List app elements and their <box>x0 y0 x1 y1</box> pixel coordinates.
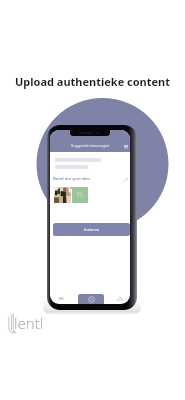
staticText: lentl <box>14 313 44 333</box>
button[interactable]: Add <box>78 294 104 304</box>
button[interactable]: Profile <box>116 295 124 302</box>
staticText: Upload authentieke content <box>0 74 185 89</box>
button[interactable]: Remove photo <box>69 186 73 190</box>
button[interactable]: Menu <box>124 145 128 148</box>
staticText: Insturen <box>84 227 100 232</box>
button[interactable]: Insturen <box>53 223 130 236</box>
button[interactable]: Add photo <box>72 187 88 203</box>
button[interactable]: Home <box>57 295 65 302</box>
staticText: Suggestie toevoegen <box>71 143 110 148</box>
staticText: Wandel door groen dalen <box>53 177 90 181</box>
